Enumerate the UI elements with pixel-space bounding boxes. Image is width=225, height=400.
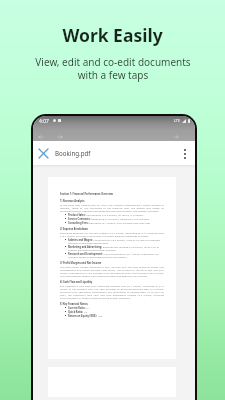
staticText: Service Contracts: Generating $7.8 milli…	[68, 217, 150, 220]
staticText: Work Easily	[62, 23, 163, 47]
staticText: In the fiscal year ending June 30, 2024,…	[60, 203, 164, 212]
staticText: 5) Key Financial Ratios	[60, 302, 88, 305]
staticText: Research and Development: Costs amounted…	[68, 252, 164, 258]
button[interactable]: More options	[177, 146, 192, 161]
staticText: Booking.pdf	[55, 149, 91, 157]
staticText: Current Ratio: 2.1	[68, 306, 90, 309]
button[interactable]: Close	[36, 146, 51, 161]
staticText: Marketing and Advertising: Expenditures …	[68, 245, 164, 251]
staticText: Operating expenses for the year totaled …	[60, 231, 164, 237]
staticText: View, edit and co-edit documents with a …	[35, 55, 191, 82]
staticText: Consulting Fees: Recording $5.1 million,…	[68, 221, 151, 224]
staticText: 4) Cash Flow and Liquidity	[60, 280, 93, 283]
staticText: 3) Profit Margins and Net Income	[60, 261, 102, 264]
staticText: The company's cash flow from operating a…	[60, 284, 164, 299]
staticText: 2) Expense Breakdown	[60, 227, 88, 230]
staticText: Return on Equity (ROE): 18%	[68, 314, 103, 317]
staticText: LTE	[174, 118, 180, 123]
staticText: The gross profit margin improved to 38%,…	[60, 265, 164, 277]
staticText: Product Sales: Contributing $14.2 millio…	[68, 213, 144, 216]
staticText: Salaries and Wages: Accounting for $8.9 …	[68, 238, 164, 244]
staticText: 4:07	[39, 118, 49, 125]
staticText: Section 1: Financial Performance Overvie…	[60, 192, 113, 195]
staticText: 1) Revenue Analysis	[60, 199, 85, 202]
staticText: Quick Ratio: 1.6	[68, 310, 88, 313]
